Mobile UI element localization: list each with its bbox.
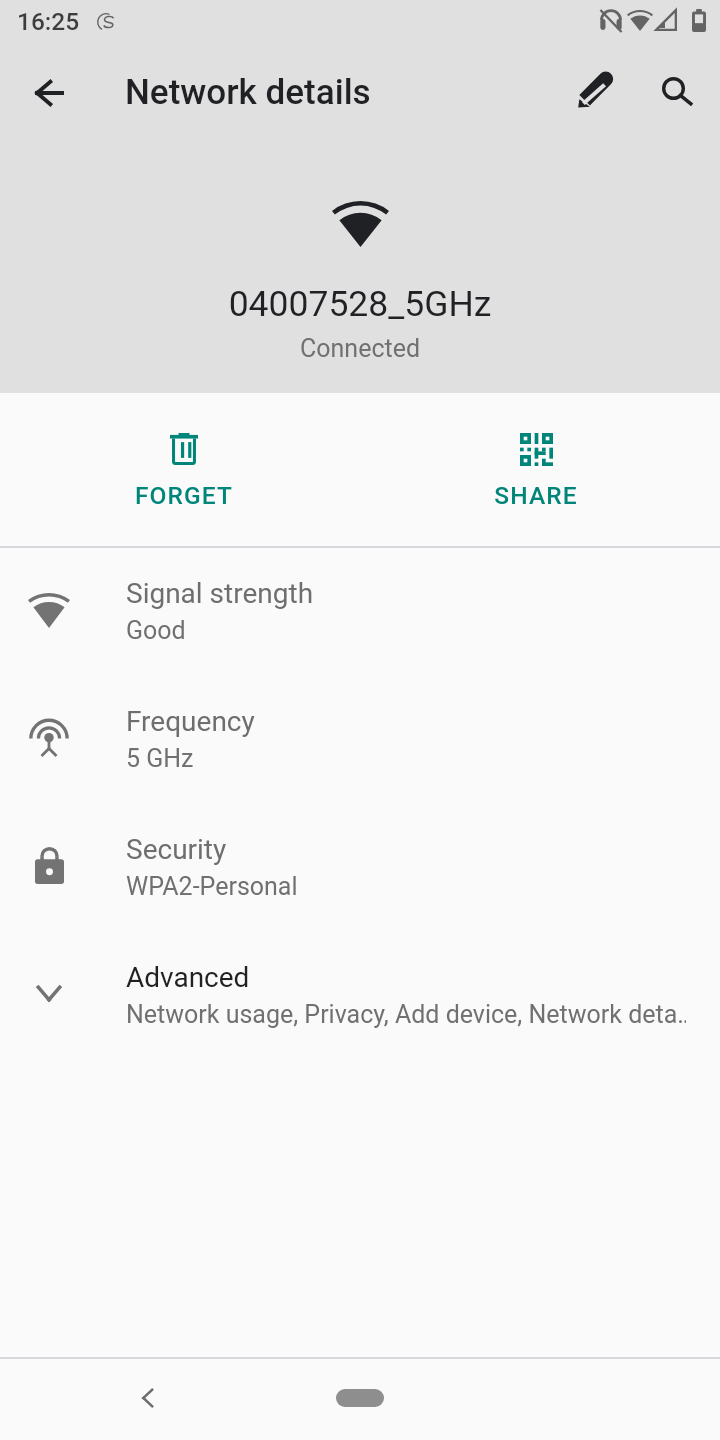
staticText: 04007528_5GHz xyxy=(0,283,720,325)
staticText: FORGET xyxy=(8,481,360,510)
staticText: Advanced xyxy=(126,961,250,994)
staticText: Network details xyxy=(125,72,371,113)
staticText: SHARE xyxy=(360,481,712,510)
staticText: Frequency xyxy=(126,705,255,738)
button[interactable]: Home xyxy=(336,1389,384,1407)
staticText: WPA2-Personal xyxy=(126,872,686,901)
button[interactable]: SHARE xyxy=(360,393,712,546)
staticText: Network usage, Privacy, Add device, Netw… xyxy=(126,1000,686,1029)
button[interactable]: Signal strength xyxy=(0,548,720,676)
staticText: Connected xyxy=(0,334,720,363)
button[interactable]: FORGET xyxy=(8,393,360,546)
button[interactable]: Frequency xyxy=(0,676,720,804)
button[interactable]: Security xyxy=(0,804,720,932)
button[interactable]: Back xyxy=(21,65,77,121)
staticText: 16:25 xyxy=(17,7,80,36)
staticText: 5 GHz xyxy=(126,744,686,773)
staticText: Security xyxy=(126,833,227,866)
staticText: Signal strength xyxy=(126,577,314,610)
button[interactable]: Back xyxy=(123,1374,171,1422)
button[interactable]: Advanced xyxy=(0,932,720,1060)
staticText: Good xyxy=(126,616,686,645)
button[interactable]: Search xyxy=(649,63,705,119)
button[interactable]: Edit xyxy=(566,63,622,119)
